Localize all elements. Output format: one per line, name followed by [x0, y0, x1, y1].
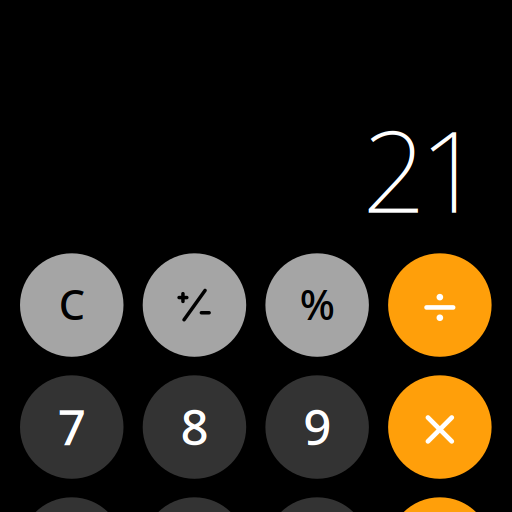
- button[interactable]: Plus minus: [143, 253, 246, 357]
- staticText: %: [300, 276, 335, 331]
- button[interactable]: Multiply: [388, 375, 492, 479]
- button[interactable]: %: [265, 253, 369, 357]
- button[interactable]: 7: [20, 375, 123, 479]
- button[interactable]: Subtract: [388, 497, 492, 512]
- staticText: 2: [362, 95, 426, 244]
- staticText: C: [59, 276, 85, 331]
- staticText: 7: [58, 393, 86, 459]
- button[interactable]: 4: [20, 497, 123, 512]
- button[interactable]: C: [20, 253, 123, 357]
- button[interactable]: 5: [143, 497, 246, 512]
- staticText: 8: [180, 393, 208, 459]
- staticText: 9: [303, 393, 331, 459]
- button[interactable]: 9: [265, 375, 369, 479]
- button[interactable]: Divide: [388, 253, 492, 357]
- button[interactable]: 8: [143, 375, 246, 479]
- staticText: 1: [419, 95, 483, 244]
- button[interactable]: 6: [265, 497, 369, 512]
